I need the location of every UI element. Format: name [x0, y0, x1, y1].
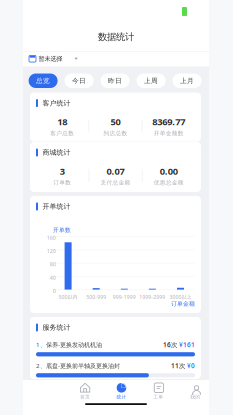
button[interactable]: 首页 [70, 382, 100, 400]
staticText: 上周 [144, 77, 158, 85]
staticText: 上月 [180, 77, 194, 85]
button[interactable]: 统计 [106, 382, 136, 400]
staticText: 今日 [72, 77, 86, 85]
staticText: 支付总金额 [100, 179, 130, 186]
staticText: 999-1999 [113, 293, 136, 300]
staticText: 统计 [116, 394, 126, 400]
button[interactable]: 总览 [29, 73, 58, 88]
button[interactable]: 我的 [180, 382, 210, 400]
staticText: 订单数 [53, 179, 71, 186]
staticText: 50 [110, 115, 120, 128]
staticText: 到店总数 [103, 130, 127, 137]
staticText: 开单数 [53, 226, 71, 234]
staticText: 120 [47, 247, 56, 255]
staticText: 3000以上 [169, 293, 191, 300]
staticText: 18 [57, 115, 67, 128]
staticText: 1、保养-更换发动机机油 [36, 340, 102, 349]
staticText: 500-999 [86, 293, 106, 300]
staticText: 商城统计 [42, 148, 70, 157]
staticText: 首页 [80, 394, 90, 400]
staticText: 16次 [163, 340, 177, 349]
staticText: ¥161 [179, 340, 195, 349]
button[interactable]: 暂未选择 [23, 51, 209, 66]
staticText: 客户总数 [50, 130, 74, 137]
staticText: 3 [60, 165, 65, 177]
staticText: 工单 [153, 394, 163, 400]
staticText: 0.07 [106, 165, 124, 177]
button[interactable]: 上周 [137, 73, 166, 88]
staticText: 暂未选择 [38, 55, 62, 63]
button[interactable]: 今日 [65, 73, 94, 88]
staticText: 11次 [171, 361, 185, 370]
staticText: 500以内 [58, 293, 77, 300]
staticText: 0.00 [160, 165, 178, 177]
staticText: 8369.77 [152, 115, 185, 128]
button[interactable]: 工单 [143, 382, 173, 400]
staticText: 开单统计 [42, 202, 70, 211]
button[interactable]: 昨日 [101, 73, 130, 88]
staticText: 开单金额数 [154, 130, 184, 137]
staticText: 1999-2999 [139, 293, 165, 300]
staticText: 总览 [36, 77, 50, 85]
staticText: ¥0 [187, 361, 195, 370]
staticText: 客户统计 [42, 99, 70, 107]
staticText: 服务统计 [42, 323, 70, 332]
staticText: 40 [50, 274, 56, 281]
staticText: 数据统计 [98, 31, 134, 43]
staticText: 我的 [190, 394, 200, 400]
button[interactable]: 上月 [173, 73, 202, 88]
staticText: 0 [53, 287, 56, 295]
staticText: 优惠总金额 [154, 179, 184, 186]
staticText: 160 [47, 234, 56, 241]
staticText: 2、底盘-更换前半轴及更换油封 [36, 361, 120, 370]
staticText: 订单金额 [171, 300, 195, 307]
staticText: 昨日 [108, 77, 122, 85]
staticText: 80 [50, 261, 56, 268]
